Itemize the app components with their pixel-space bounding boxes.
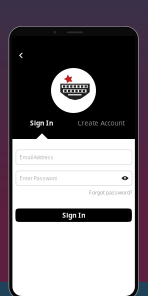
staticText: Sign In [62, 211, 85, 220]
button[interactable]: Create Account [71, 118, 131, 128]
staticText: Enter Password [19, 175, 57, 182]
staticText: Create Account [77, 119, 124, 127]
staticText: Email Address [19, 154, 53, 161]
button[interactable]: Email Address [16, 150, 132, 164]
staticText: Forgot password? [89, 189, 132, 196]
button[interactable]: Forgot password? [89, 189, 132, 196]
staticText: Sign In [30, 119, 53, 127]
button[interactable]: Enter Password [16, 171, 132, 185]
button[interactable]: Sign In [15, 208, 132, 222]
button[interactable]: Back [13, 49, 28, 62]
button[interactable]: Sign In [13, 118, 69, 128]
